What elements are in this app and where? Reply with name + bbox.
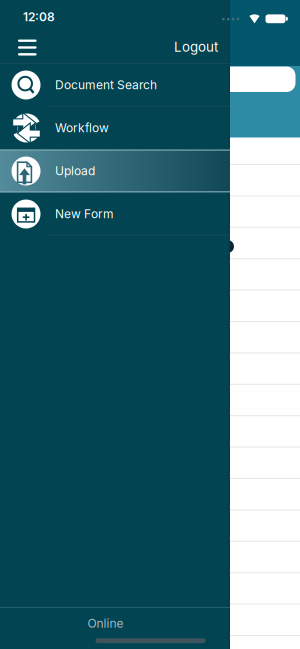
staticText: Document Search bbox=[55, 78, 157, 92]
staticText: New Form bbox=[55, 207, 114, 221]
button[interactable]: New Form bbox=[0, 192, 230, 235]
staticText: Logout bbox=[174, 39, 218, 55]
button[interactable]: Menu bbox=[10, 31, 45, 63]
button[interactable]: Document Search bbox=[0, 63, 230, 106]
button[interactable]: Workflow bbox=[0, 106, 230, 149]
staticText: Online bbox=[87, 616, 123, 631]
staticText: Upload bbox=[55, 164, 95, 178]
button[interactable]: Upload bbox=[0, 149, 230, 192]
button[interactable]: Logout bbox=[138, 32, 218, 62]
staticText: 12:08 bbox=[23, 10, 55, 24]
staticText: Workflow bbox=[55, 121, 109, 135]
